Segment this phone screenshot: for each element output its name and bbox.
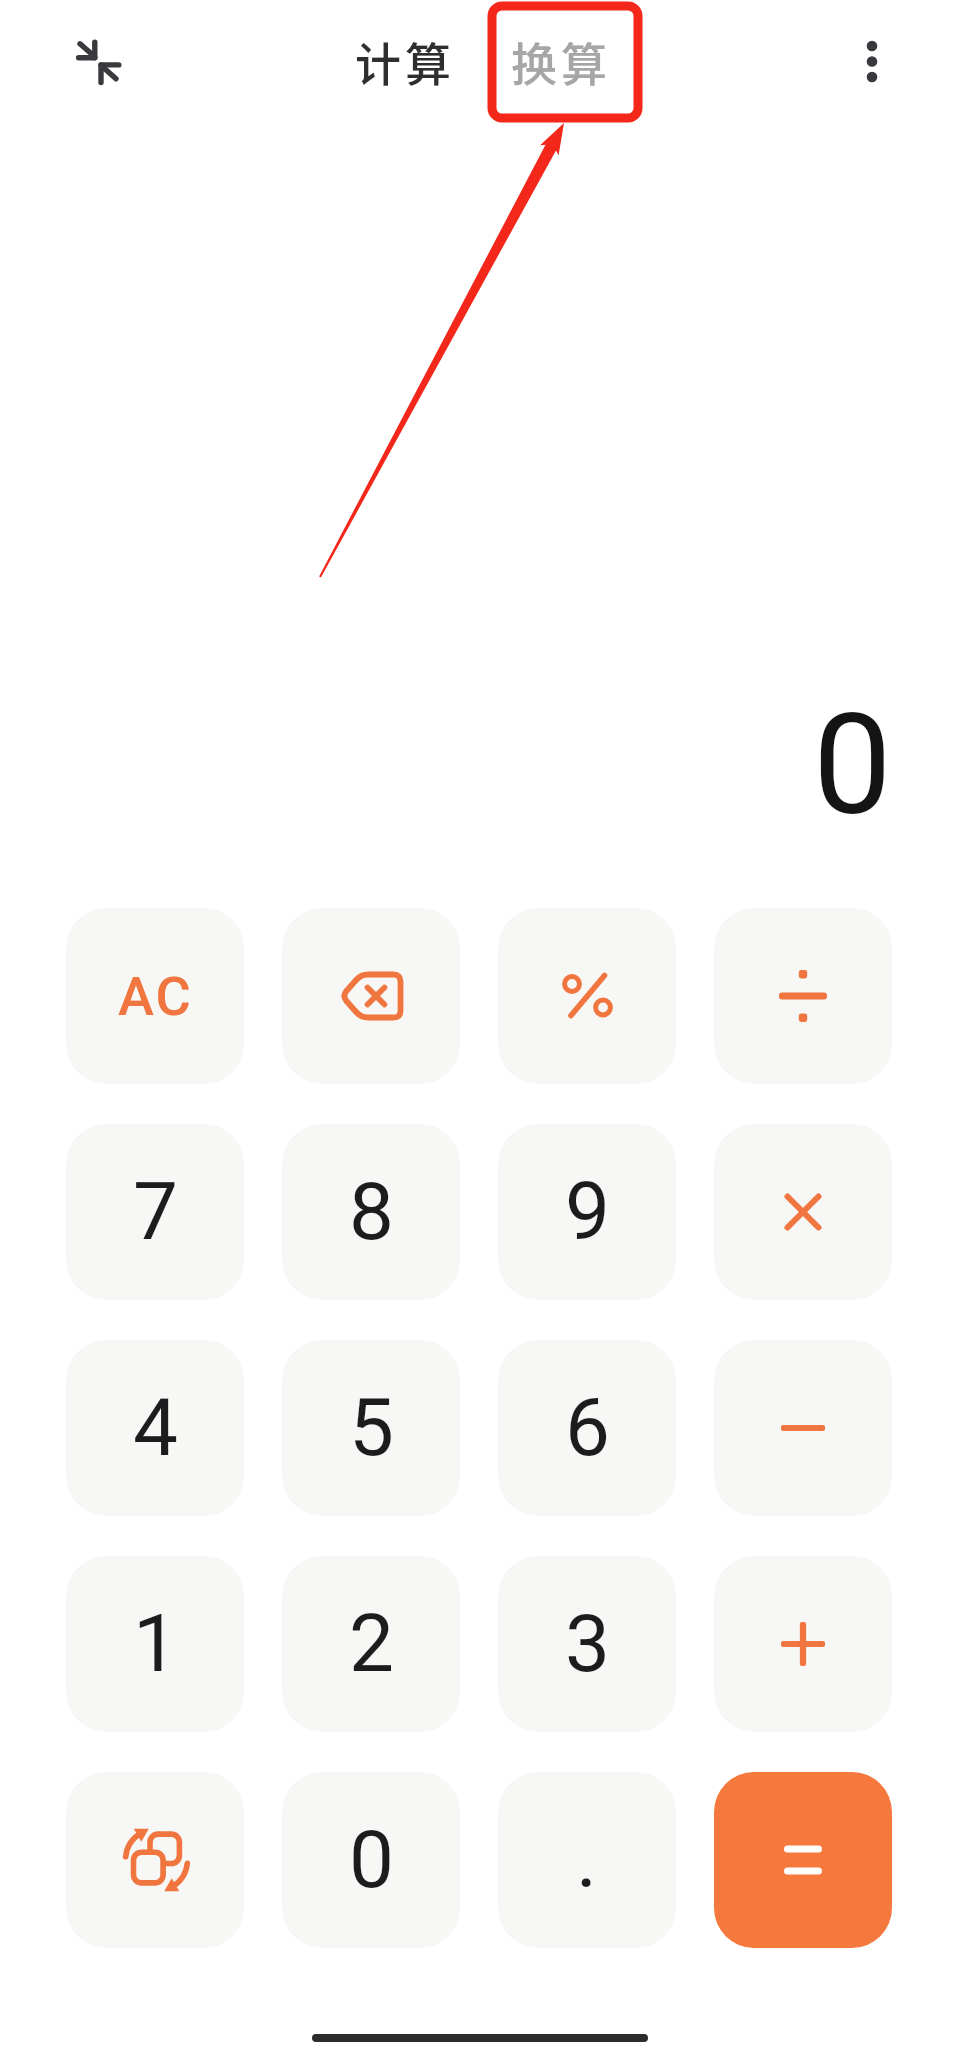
- staticText: 0: [813, 683, 892, 847]
- button[interactable]: 6: [498, 1340, 676, 1516]
- button[interactable]: 0: [282, 1772, 460, 1948]
- staticText: 计算: [353, 28, 453, 95]
- button[interactable]: [714, 1556, 892, 1732]
- button[interactable]: 8: [282, 1124, 460, 1300]
- button[interactable]: 计算: [349, 0, 457, 122]
- button[interactable]: 3: [498, 1556, 676, 1732]
- button[interactable]: [498, 908, 676, 1084]
- button[interactable]: 1: [66, 1556, 244, 1732]
- button[interactable]: [60, 25, 130, 95]
- button[interactable]: [282, 908, 460, 1084]
- button[interactable]: [66, 1772, 244, 1948]
- staticText: 3: [565, 1597, 610, 1691]
- button[interactable]: [714, 1340, 892, 1516]
- button[interactable]: 5: [282, 1340, 460, 1516]
- button[interactable]: .: [498, 1772, 676, 1948]
- button[interactable]: [714, 1124, 892, 1300]
- staticText: 7: [133, 1165, 178, 1259]
- staticText: 9: [565, 1165, 610, 1259]
- staticText: 0: [349, 1813, 394, 1907]
- button[interactable]: 9: [498, 1124, 676, 1300]
- staticText: 换算: [509, 28, 609, 95]
- button[interactable]: [714, 1772, 892, 1948]
- staticText: 8: [349, 1165, 394, 1259]
- button[interactable]: 4: [66, 1340, 244, 1516]
- button[interactable]: 2: [282, 1556, 460, 1732]
- button[interactable]: [844, 18, 900, 104]
- staticText: AC: [118, 965, 193, 1028]
- button[interactable]: 换算: [505, 0, 613, 122]
- staticText: .: [576, 1813, 598, 1907]
- button[interactable]: [714, 908, 892, 1084]
- staticText: 5: [349, 1381, 394, 1475]
- staticText: 2: [349, 1597, 394, 1691]
- staticText: 6: [565, 1381, 610, 1475]
- button[interactable]: 7: [66, 1124, 244, 1300]
- button[interactable]: AC: [66, 908, 244, 1084]
- staticText: 1: [133, 1597, 178, 1691]
- staticText: 4: [133, 1381, 178, 1475]
